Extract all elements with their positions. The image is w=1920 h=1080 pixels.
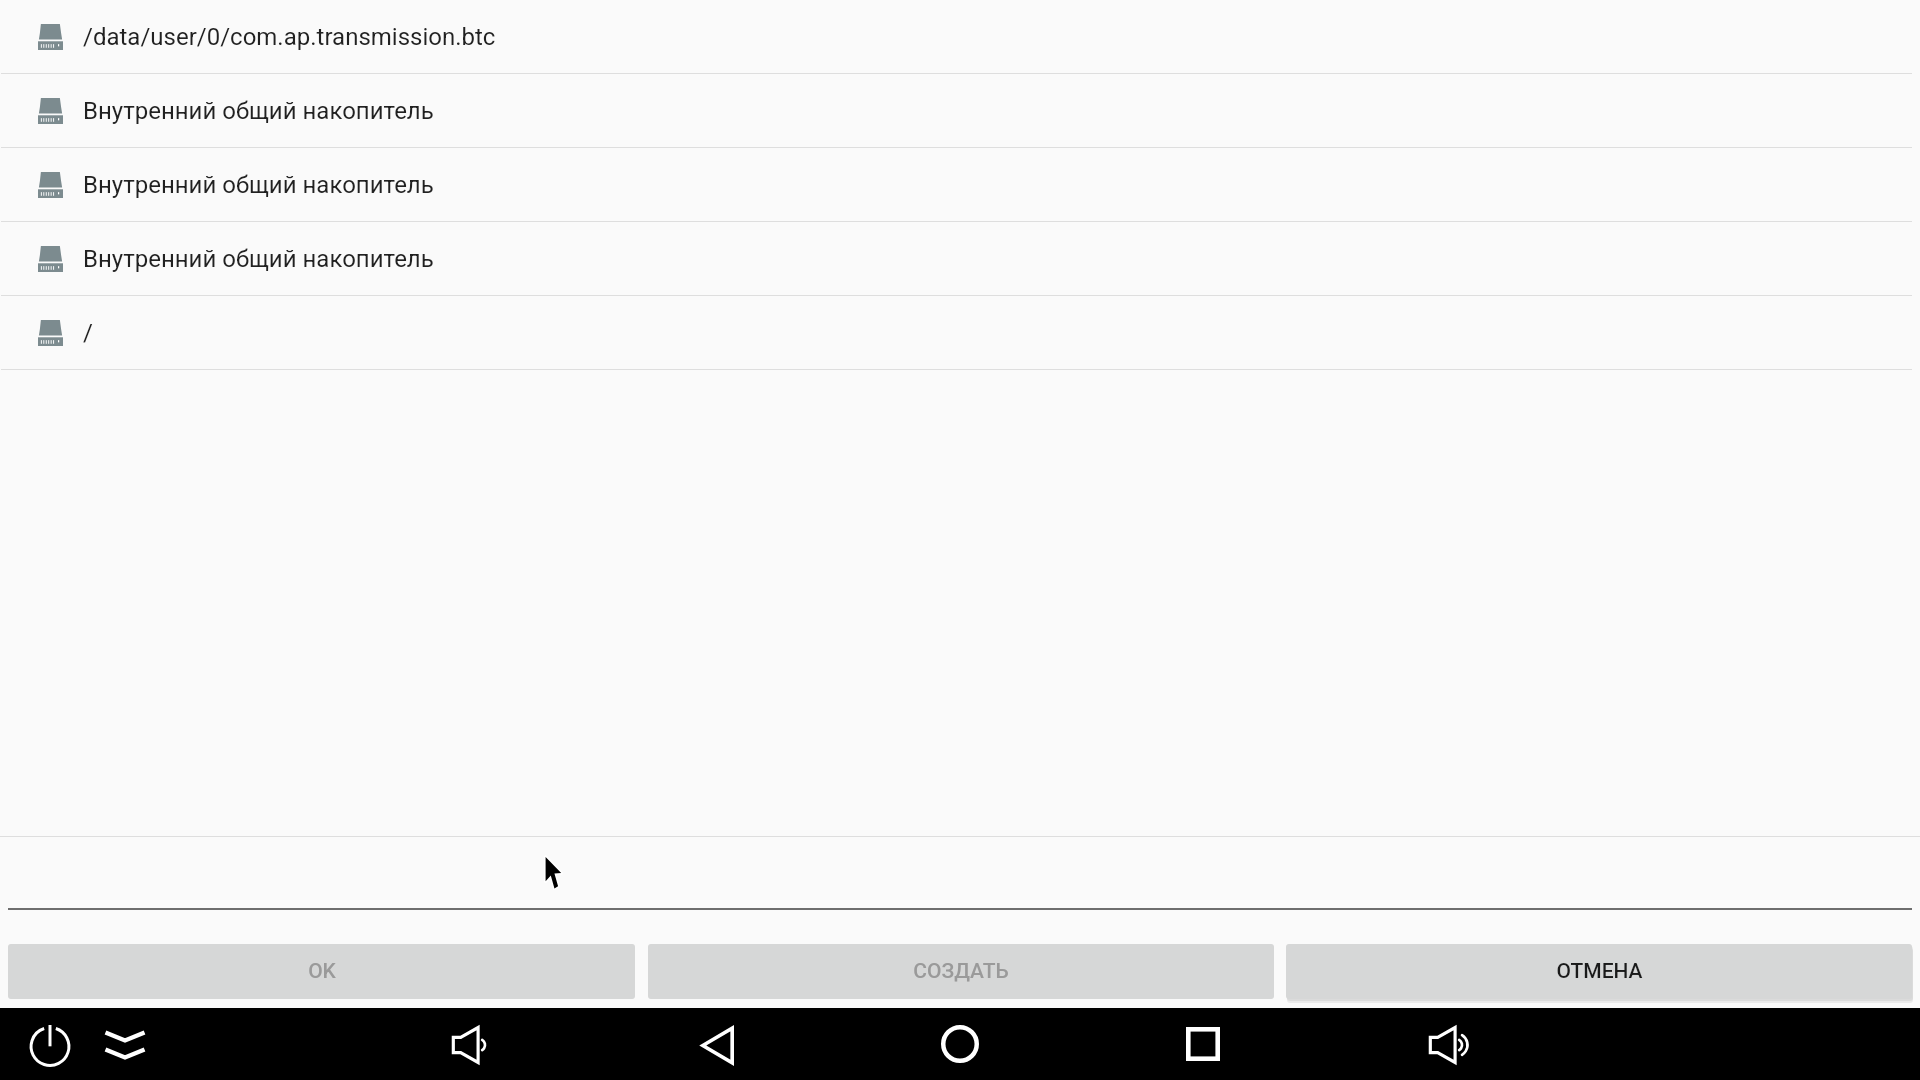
- staticText: Внутренний общий накопитель: [83, 245, 434, 273]
- button[interactable]: Notifications: [94, 1013, 156, 1075]
- button[interactable]: Volume up: [1418, 1014, 1480, 1076]
- button[interactable]: OK: [8, 944, 635, 999]
- staticText: СОЗДАТЬ: [913, 959, 1009, 984]
- button[interactable]: Внутренний общий накопитель: [0, 148, 1920, 222]
- staticText: /data/user/0/com.ap.transmission.btc: [83, 23, 496, 51]
- button[interactable]: Внутренний общий накопитель: [0, 74, 1920, 148]
- button[interactable]: /: [0, 296, 1920, 370]
- button[interactable]: Home: [929, 1013, 991, 1075]
- button[interactable]: СОЗДАТЬ: [648, 944, 1274, 999]
- button[interactable]: Recents: [1172, 1013, 1234, 1075]
- staticText: Внутренний общий накопитель: [83, 171, 434, 199]
- button[interactable]: /data/user/0/com.ap.transmission.btc: [0, 0, 1920, 74]
- button[interactable]: Volume down: [441, 1014, 503, 1076]
- staticText: /: [83, 319, 93, 347]
- button[interactable]: Back: [686, 1014, 748, 1076]
- button[interactable]: ОТМЕНА: [1286, 944, 1912, 999]
- button[interactable]: Внутренний общий накопитель: [0, 222, 1920, 296]
- staticText: OK: [308, 959, 336, 984]
- button[interactable]: Power: [19, 1014, 81, 1076]
- staticText: Внутренний общий накопитель: [83, 97, 434, 125]
- staticText: ОТМЕНА: [1556, 959, 1643, 984]
